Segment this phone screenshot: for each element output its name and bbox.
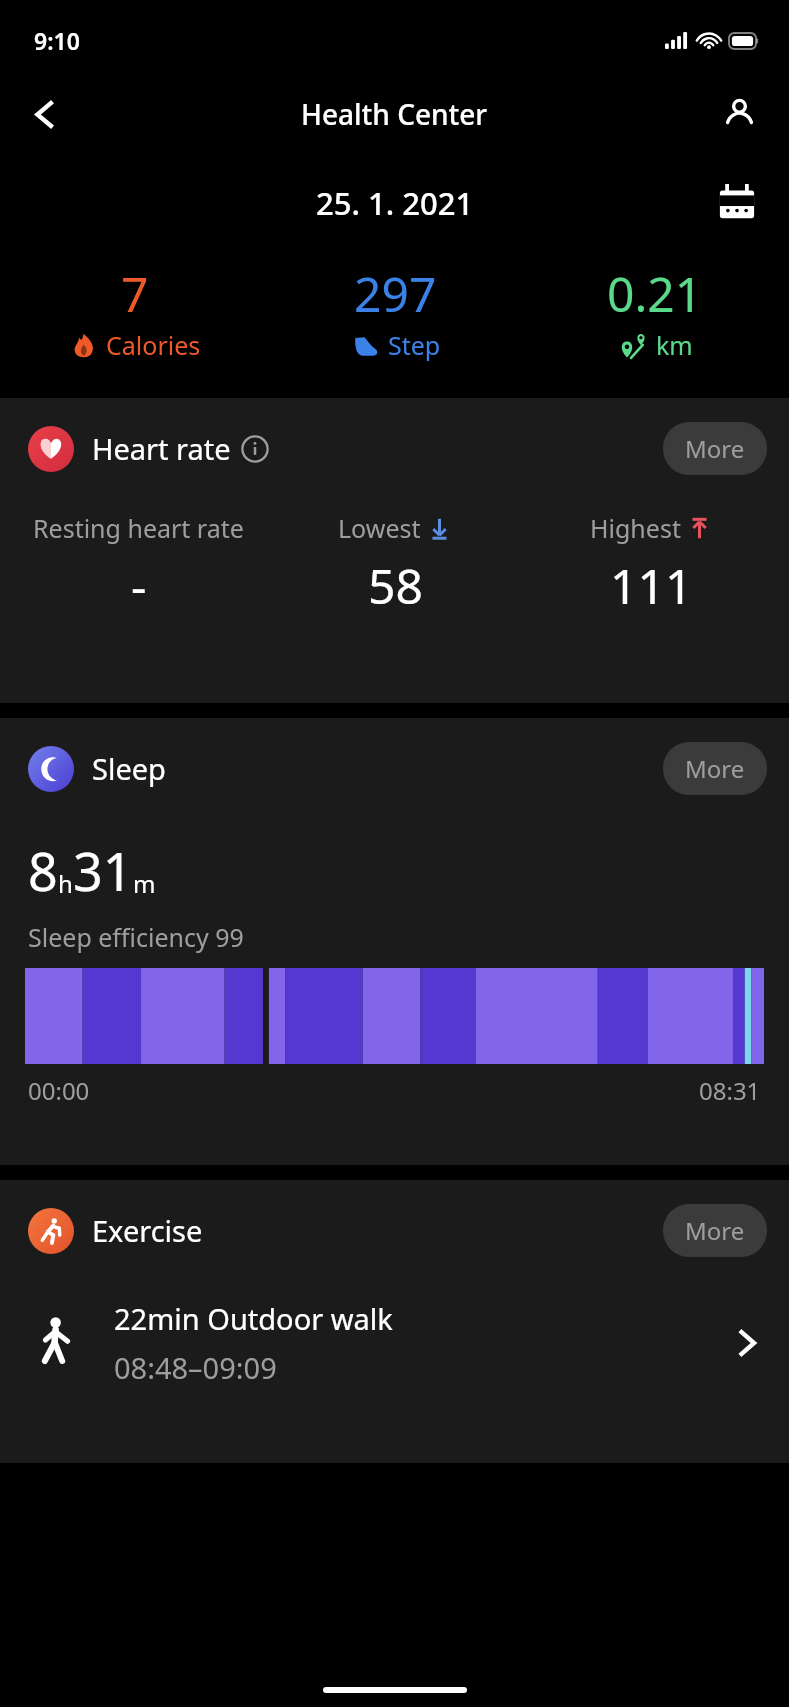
staticText: Sleep [92, 749, 166, 788]
button[interactable]: Back [14, 83, 76, 145]
staticText: Sleep efficiency 99 [28, 920, 244, 954]
button[interactable]: Sleep [0, 718, 789, 1165]
button[interactable]: More [663, 422, 767, 475]
other: Details [731, 1327, 763, 1359]
button[interactable]: Profile [709, 84, 769, 144]
staticText: 08:48–09:09 [114, 1348, 277, 1387]
staticText: Calories [106, 328, 201, 362]
staticText: 58 [368, 553, 423, 618]
staticText: Health Center [301, 95, 488, 133]
staticText: 08:31 [699, 1074, 761, 1107]
button[interactable]: More [663, 1204, 767, 1257]
staticText: 111 [610, 553, 693, 618]
button[interactable]: 7 [4, 261, 265, 362]
staticText: km [656, 328, 693, 362]
staticText: Step [388, 328, 441, 362]
staticText: More [685, 1214, 745, 1247]
staticText: Exercise [92, 1211, 203, 1250]
staticText: 8 [28, 835, 58, 906]
button[interactable]: Calendar [709, 175, 765, 231]
staticText: - [131, 553, 147, 618]
staticText: Heart rate [92, 429, 231, 468]
staticText: 9:10 [34, 25, 80, 56]
staticText: 0.21 [607, 261, 703, 326]
staticText: Highest [590, 511, 681, 545]
staticText: More [685, 432, 745, 465]
button[interactable]: 22min Outdoor walk [0, 1299, 789, 1387]
staticText: 25. 1. 2021 [316, 182, 474, 224]
staticText: Resting heart rate [33, 511, 244, 545]
staticText: 22min Outdoor walk [114, 1299, 393, 1338]
staticText: h [58, 867, 73, 900]
button[interactable]: 0.21 [525, 261, 785, 362]
button[interactable]: 297 [265, 261, 525, 362]
staticText: Lowest [338, 511, 421, 545]
button[interactable]: Heart rate [0, 398, 789, 703]
button[interactable]: More [663, 742, 767, 795]
button[interactable]: Info [241, 435, 269, 463]
staticText: m [133, 867, 156, 900]
staticText: 00:00 [28, 1074, 90, 1107]
staticText: 297 [354, 261, 437, 326]
staticText: 31 [73, 835, 133, 906]
staticText: More [685, 752, 745, 785]
staticText: 7 [121, 261, 149, 326]
